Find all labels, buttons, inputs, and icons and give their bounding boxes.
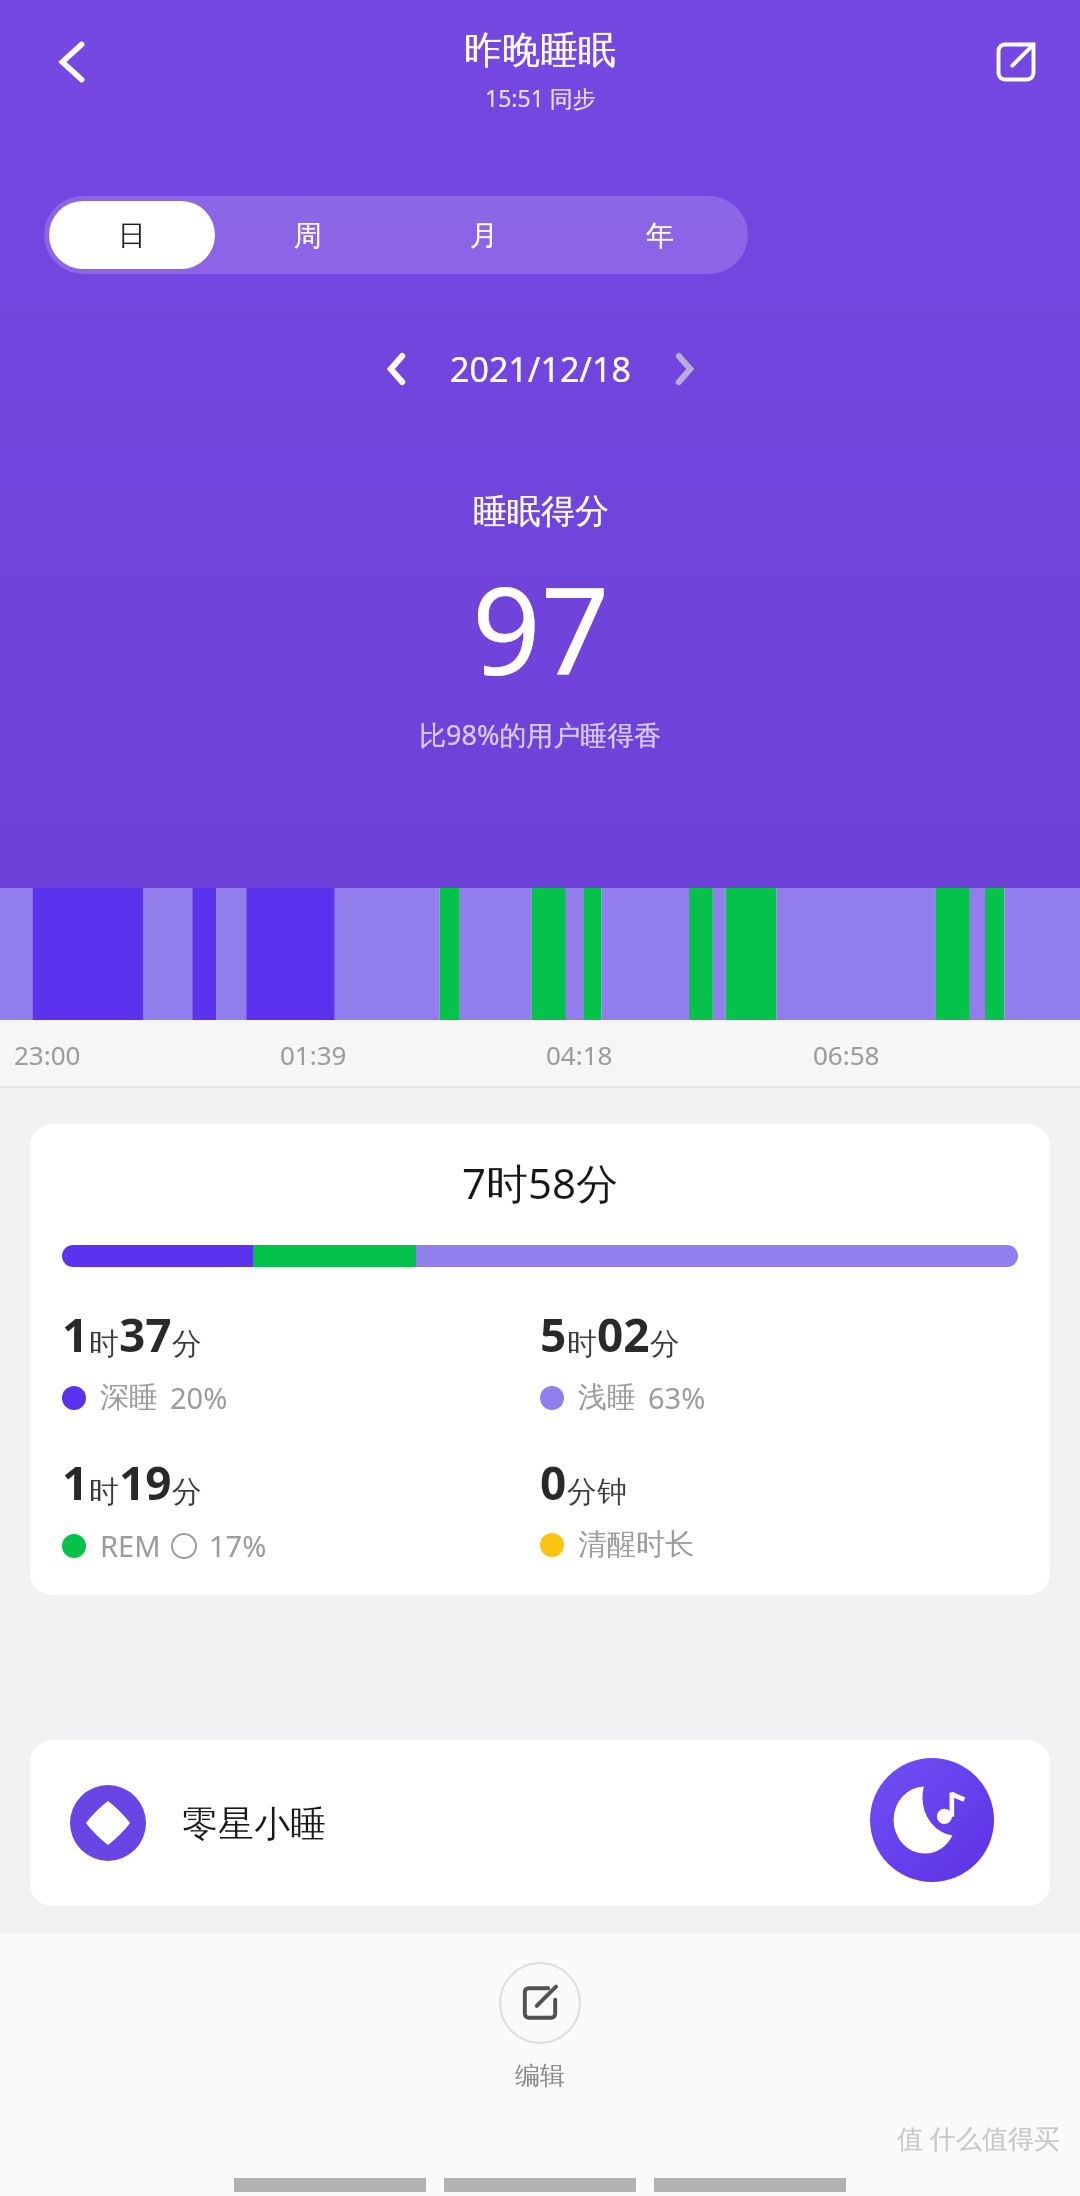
staticText: 0 — [949, 1799, 970, 1848]
staticText: 睡眠得分 — [473, 490, 609, 533]
button[interactable]: Edit — [499, 1962, 581, 2091]
button[interactable]: Back — [24, 14, 120, 110]
staticText: 1 — [62, 1451, 89, 1514]
staticText: 97 — [472, 547, 610, 710]
button[interactable]: 7时58分 — [30, 1124, 1050, 1595]
staticText: 值 什么值得买 — [897, 2120, 1060, 2156]
staticText: 17% — [209, 1526, 267, 1565]
staticText: 时 — [567, 1325, 597, 1363]
staticText: 02 — [597, 1303, 650, 1366]
staticText: 深睡 — [100, 1379, 158, 1416]
staticText: 15:51 同步 — [485, 82, 596, 113]
button[interactable]: Sleep music — [870, 1758, 994, 1882]
staticText: 01:39 — [280, 1037, 347, 1072]
staticText: 19 — [119, 1451, 172, 1514]
staticText: 时 — [89, 1325, 119, 1363]
staticText: 昨晚睡眠 — [464, 26, 616, 74]
staticText: 2021/12/18 — [450, 346, 631, 392]
button[interactable]: Share — [968, 14, 1064, 110]
staticText: 年 — [646, 218, 674, 253]
staticText: REM — [100, 1526, 161, 1565]
button[interactable]: Previous day — [360, 332, 434, 406]
staticText: 04:18 — [546, 1037, 613, 1072]
staticText: 37 — [119, 1303, 172, 1366]
staticText: 7时58分 — [462, 1154, 619, 1211]
staticText: 日 — [118, 218, 146, 253]
staticText: 63% — [648, 1378, 706, 1417]
staticText: 比98%的用户睡得香 — [419, 716, 662, 753]
button[interactable]: 年 — [577, 201, 743, 269]
staticText: 23:00 — [14, 1037, 81, 1072]
button[interactable]: Next day — [647, 332, 721, 406]
button[interactable]: 月 — [401, 201, 567, 269]
staticText: 编辑 — [515, 2060, 565, 2091]
button[interactable]: 日 — [49, 201, 215, 269]
staticText: 零星小睡 — [182, 1801, 326, 1846]
staticText: 清醒时长 — [578, 1526, 694, 1563]
staticText: 月 — [470, 218, 498, 253]
button[interactable]: 零星小睡 — [30, 1740, 1050, 1906]
staticText: 0 — [540, 1451, 567, 1514]
staticText: 分 — [172, 1325, 202, 1363]
staticText: 20% — [170, 1378, 228, 1417]
staticText: 分钟 — [567, 1473, 627, 1511]
staticText: 06:58 — [813, 1037, 880, 1072]
staticText: 1 — [62, 1303, 89, 1366]
button[interactable]: 周 — [225, 201, 391, 269]
staticText: 浅睡 — [578, 1379, 636, 1416]
staticText: 时 — [89, 1473, 119, 1511]
staticText: 5 — [540, 1303, 567, 1366]
staticText: 分 — [172, 1473, 202, 1511]
staticText: 分 — [650, 1325, 680, 1363]
staticText: 周 — [294, 218, 322, 253]
